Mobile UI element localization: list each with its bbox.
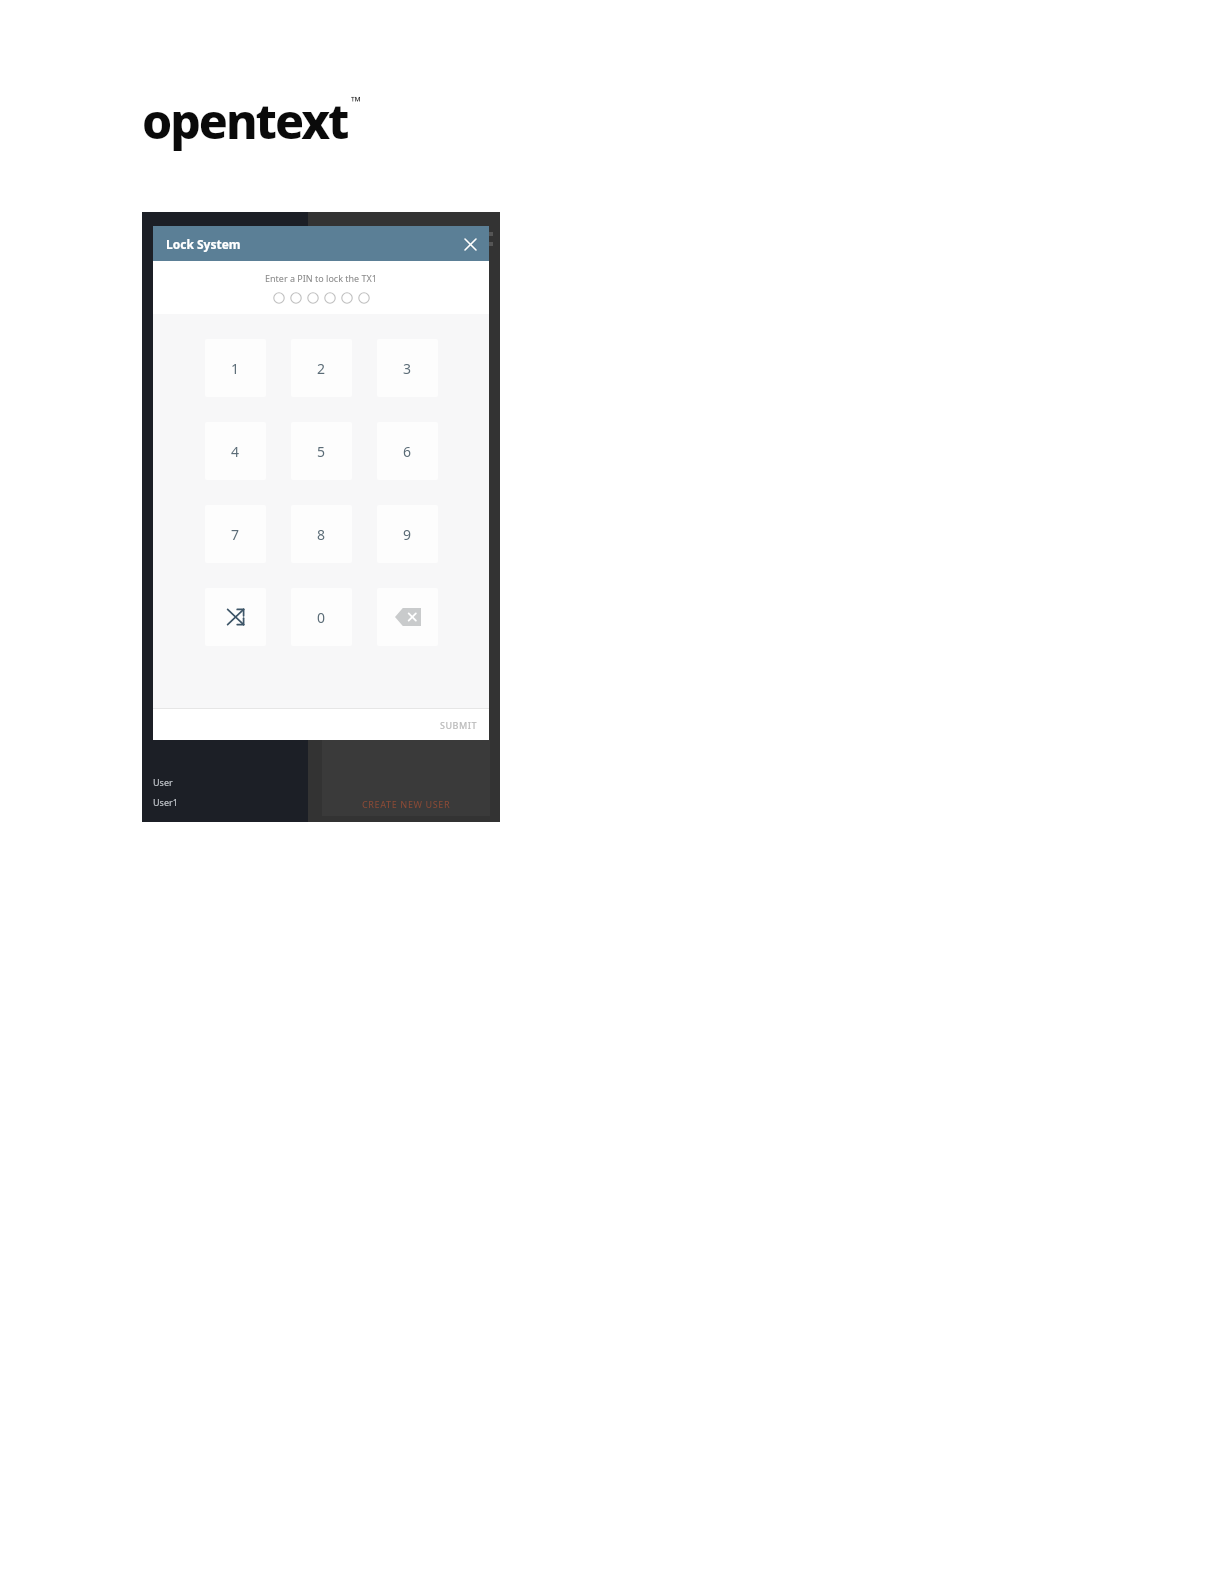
- staticText: opentext: [142, 88, 348, 153]
- staticText: 0: [317, 608, 326, 627]
- button[interactable]: 6: [377, 422, 438, 480]
- staticText: ™: [351, 92, 362, 110]
- staticText: SUBMIT: [440, 719, 477, 731]
- button[interactable]: 7: [205, 505, 266, 563]
- staticText: Enter a PIN to lock the TX1: [265, 272, 377, 284]
- button[interactable]: 4: [205, 422, 266, 480]
- button[interactable]: CREATE NEW USER: [322, 740, 490, 816]
- staticText: 6: [403, 442, 412, 461]
- button[interactable]: 9: [377, 505, 438, 563]
- staticText: 9: [403, 525, 412, 544]
- staticText: User: [153, 776, 173, 788]
- button[interactable]: 8: [291, 505, 352, 563]
- button[interactable]: Shuffle: [205, 588, 266, 646]
- staticText: 4: [231, 442, 240, 461]
- button[interactable]: 3: [377, 339, 438, 397]
- staticText: User1: [153, 796, 178, 808]
- button[interactable]: 0: [291, 588, 352, 646]
- button[interactable]: Backspace: [377, 588, 438, 646]
- button[interactable]: 1: [205, 339, 266, 397]
- staticText: CREATE NEW USER: [362, 798, 451, 810]
- button[interactable]: SUBMIT: [434, 715, 483, 735]
- staticText: 3: [403, 359, 412, 378]
- staticText: 7: [231, 525, 240, 544]
- staticText: 5: [317, 442, 326, 461]
- button[interactable]: 2: [291, 339, 352, 397]
- staticText: 2: [317, 359, 326, 378]
- button[interactable]: Close: [459, 233, 481, 255]
- staticText: 1: [231, 359, 240, 378]
- staticText: 8: [317, 525, 326, 544]
- staticText: Lock System: [166, 236, 241, 252]
- button[interactable]: 5: [291, 422, 352, 480]
